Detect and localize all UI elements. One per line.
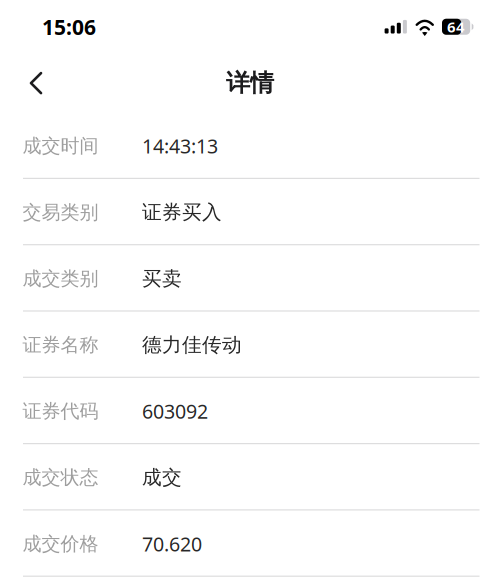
staticText: 15:06 (42, 12, 96, 41)
staticText: 14:43:13 (142, 133, 218, 159)
staticText: 德力佳传动 (142, 333, 242, 357)
staticText: 64 (447, 16, 465, 37)
staticText: 成交 (142, 465, 182, 490)
staticText: 买卖 (142, 266, 182, 291)
staticText: 70.620 (142, 530, 202, 557)
staticText: 成交状态 (22, 465, 98, 489)
staticText: 证券名称 (22, 333, 98, 357)
staticText: 成交时间 (22, 134, 98, 158)
staticText: 证券代码 (22, 399, 98, 423)
staticText: 成交类别 (22, 267, 98, 290)
staticText: 交易类别 (22, 200, 98, 224)
staticText: 成交价格 (22, 532, 98, 556)
staticText: 603092 (142, 398, 208, 425)
button[interactable]: Back (14, 61, 58, 105)
staticText: 详情 (226, 68, 274, 98)
staticText: 证券买入 (142, 200, 222, 225)
